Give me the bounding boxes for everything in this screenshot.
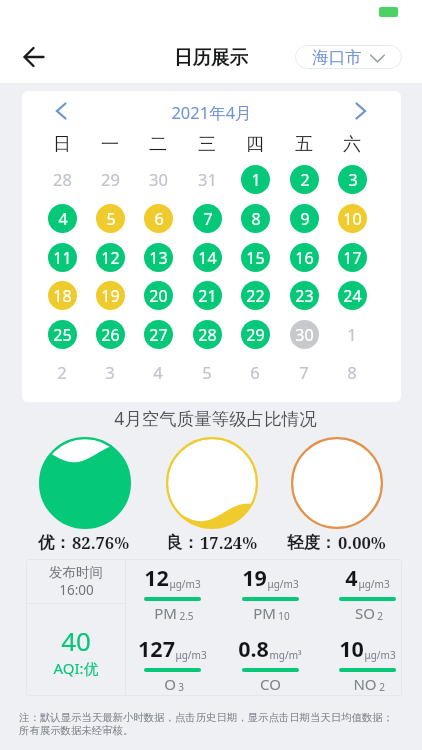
button[interactable]: 28 [43,160,81,198]
staticText: 3 [178,680,184,694]
staticText: 16:00 [59,581,94,599]
button[interactable]: 3 [91,353,129,391]
staticText: AQI:优 [53,658,99,678]
staticText: 21 [198,285,217,307]
button[interactable]: 3 [333,160,371,198]
staticText: 1 [251,169,261,191]
button[interactable]: 19 [215,563,325,621]
staticText: mg/m³ [269,648,302,662]
staticText: 20 [149,285,168,307]
button[interactable]: 17 [333,238,371,276]
button[interactable]: 12 [91,238,129,276]
staticText: 29 [101,168,120,190]
staticText: 28 [198,324,217,346]
staticText: 2021年4月 [171,101,252,123]
staticText: 9 [300,208,310,230]
staticText: 8 [251,208,261,230]
button[interactable]: 13 [139,238,177,276]
button[interactable]: 9 [285,199,323,237]
staticText: 日 [53,133,71,156]
staticText: 海口市 [312,47,362,68]
staticText: 所有展示数据未经审核。 [19,724,134,737]
staticText: 3 [105,361,115,383]
staticText: 2 [300,169,310,191]
button[interactable]: 18 [43,276,81,314]
staticText: 30 [295,324,314,346]
button[interactable]: 6 [236,353,274,391]
button[interactable]: 27 [139,315,177,353]
button[interactable]: 31 [188,160,226,198]
staticText: 2.5 [179,609,194,623]
button[interactable]: 29 [91,160,129,198]
staticText: 3 [348,169,358,191]
button[interactable]: 4 [139,353,177,391]
button[interactable]: 1 [236,160,274,198]
staticText: 13 [149,247,168,269]
staticText: 12 [144,563,169,592]
button[interactable]: 7 [188,199,226,237]
staticText: 82.76% [72,531,130,553]
staticText: 10 [343,208,362,230]
staticText: 19 [242,563,267,592]
staticText: 一 [101,133,119,156]
staticText: 28 [53,168,72,190]
button[interactable]: 30 [139,160,177,198]
button[interactable]: Back [14,37,54,77]
button[interactable]: 5 [188,353,226,391]
staticText: 22 [246,285,265,307]
button[interactable]: 23 [285,276,323,314]
button[interactable]: 20 [139,276,177,314]
button[interactable]: 0.8 [215,634,325,692]
button[interactable]: 7 [285,353,323,391]
button[interactable]: 29 [236,315,274,353]
button[interactable]: 22 [236,276,274,314]
staticText: 0.00% [338,531,386,553]
button[interactable]: 21 [188,276,226,314]
button[interactable]: 30 [285,315,323,353]
staticText: PM [154,603,177,621]
staticText: NO [353,674,377,692]
staticText: 10 [278,609,290,623]
staticText: 良： [166,532,199,553]
staticText: 14 [198,247,217,269]
button[interactable]: 2 [285,160,323,198]
button[interactable]: 12 [117,563,227,621]
staticText: 2 [57,361,67,383]
button[interactable]: 1 [333,315,371,353]
button[interactable]: 15 [236,238,274,276]
staticText: CO [260,674,281,692]
staticText: μg/m3 [175,648,207,662]
staticText: 4 [345,563,358,592]
button[interactable]: Next month [345,95,377,127]
staticText: 五 [295,133,313,156]
button[interactable]: 11 [43,238,81,276]
button[interactable]: 6 [139,199,177,237]
button[interactable]: 19 [91,276,129,314]
staticText: 16 [295,247,314,269]
button[interactable]: 4 [312,563,422,621]
staticText: 40 [61,623,91,658]
staticText: 11 [53,247,72,269]
button[interactable]: 8 [236,199,274,237]
staticText: 25 [53,324,72,346]
button[interactable]: 5 [91,199,129,237]
button[interactable]: 4 [43,199,81,237]
staticText: 7 [203,208,213,230]
button[interactable]: 10 [333,199,371,237]
button[interactable]: Previous month [45,95,77,127]
button[interactable]: 24 [333,276,371,314]
button[interactable]: 127 [117,634,227,692]
button[interactable]: 10 [312,634,422,692]
staticText: SO [355,603,375,621]
button[interactable]: 26 [91,315,129,353]
staticText: 1 [347,323,357,345]
button[interactable]: 14 [188,238,226,276]
button[interactable]: 2 [43,353,81,391]
button[interactable]: 16 [285,238,323,276]
button[interactable]: 25 [43,315,81,353]
button[interactable]: 8 [333,353,371,391]
staticText: 日历展示 [174,46,248,69]
button[interactable]: 28 [188,315,226,353]
button[interactable]: 海口市 [295,45,402,69]
staticText: 二 [149,133,167,156]
